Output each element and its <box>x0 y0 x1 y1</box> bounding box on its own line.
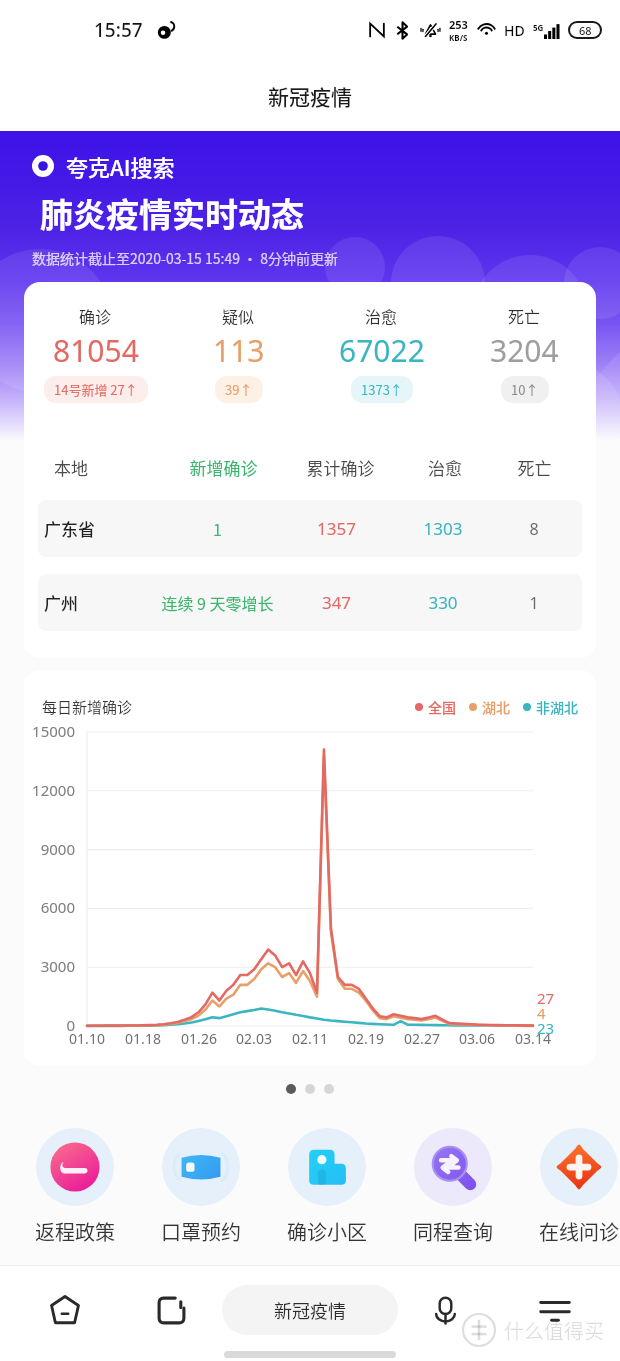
staticText: 死亡 <box>493 455 576 480</box>
staticText: 347 <box>279 591 394 614</box>
button[interactable]: 新冠疫情 <box>268 81 352 111</box>
button[interactable]: 确诊小区 <box>287 1128 367 1246</box>
staticText: 81054 <box>53 330 139 371</box>
button[interactable]: 新冠疫情 <box>222 1285 398 1335</box>
staticText: 3204 <box>490 330 559 371</box>
staticText: 113 <box>213 330 265 371</box>
button[interactable]: 广州 <box>38 574 582 631</box>
staticText: 累计确诊 <box>284 455 397 480</box>
button[interactable]: 语音搜索 <box>420 1285 470 1335</box>
staticText: 1303 <box>394 517 492 540</box>
button[interactable]: 湖北 <box>469 697 510 717</box>
button[interactable]: 治愈 <box>310 304 453 403</box>
button[interactable]: 多窗口 <box>144 1283 198 1337</box>
staticText: 02.11 <box>282 1029 338 1048</box>
staticText: 新冠疫情 <box>274 1297 346 1323</box>
staticText: 68 <box>579 23 592 37</box>
staticText: 确诊 <box>79 304 112 327</box>
staticText: 同程查询 <box>413 1217 493 1246</box>
staticText: 03.14 <box>505 1029 561 1048</box>
staticText: 1357 <box>279 517 394 540</box>
button[interactable]: 同程查询 <box>413 1128 493 1246</box>
staticText: 返程政策 <box>35 1217 115 1246</box>
staticText: 12000 <box>24 780 75 800</box>
button[interactable]: 口罩预约 <box>161 1128 241 1246</box>
staticText: 5G <box>533 22 544 33</box>
staticText: 01.18 <box>115 1029 171 1048</box>
button[interactable]: 夸克AI搜索 <box>32 150 175 182</box>
staticText: 湖北 <box>482 697 510 717</box>
staticText: 1 <box>492 592 576 614</box>
staticText: 本地 <box>54 455 163 480</box>
staticText: 330 <box>394 591 492 614</box>
staticText: 广东省 <box>44 516 156 541</box>
staticText: 1 <box>156 517 279 540</box>
staticText: 14号新增 27↑ <box>54 380 138 399</box>
staticText: 死亡 <box>508 304 541 327</box>
button[interactable]: 首页 <box>38 1283 92 1337</box>
staticText: 15:57 <box>94 17 143 43</box>
button[interactable]: 广东省 <box>38 500 582 557</box>
staticText: 连续 9 天零增长 <box>156 591 279 614</box>
staticText: 15000 <box>24 721 75 741</box>
staticText: 4 <box>537 1003 546 1023</box>
button[interactable]: 全国 <box>415 697 456 717</box>
staticText: 6000 <box>24 897 75 917</box>
staticText: 肺炎疫情实时动态 <box>40 189 304 237</box>
button[interactable]: 疑似 <box>167 304 310 403</box>
staticText: 01.10 <box>59 1029 115 1048</box>
staticText: 01.26 <box>171 1029 227 1048</box>
staticText: 02.03 <box>226 1029 282 1048</box>
staticText: 治愈 <box>397 455 493 480</box>
button[interactable]: 非湖北 <box>523 697 578 717</box>
staticText: 1373↑ <box>361 380 403 399</box>
staticText: 数据统计截止至2020-03-15 15:49 · 8分钟前更新 <box>32 248 339 268</box>
staticText: 非湖北 <box>536 697 578 717</box>
staticText: 67022 <box>339 330 425 371</box>
staticText: KB/S <box>449 32 468 43</box>
button[interactable]: 在线问诊 <box>539 1128 619 1246</box>
staticText: 全国 <box>428 697 456 717</box>
staticText: 3000 <box>24 956 75 976</box>
staticText: 新增确诊 <box>163 455 284 480</box>
staticText: 广州 <box>44 590 156 615</box>
staticText: 口罩预约 <box>161 1217 241 1246</box>
staticText: 253 <box>449 17 468 32</box>
staticText: 03.06 <box>449 1029 505 1048</box>
staticText: 夸克AI搜索 <box>66 150 175 182</box>
staticText: 疑似 <box>222 304 255 327</box>
staticText: 9000 <box>24 839 75 859</box>
staticText: 02.27 <box>394 1029 450 1048</box>
button[interactable]: 确诊 <box>24 304 167 403</box>
staticText: 每日新增确诊 <box>42 696 133 718</box>
staticText: 02.19 <box>338 1029 394 1048</box>
staticText: HD <box>504 21 525 40</box>
staticText: 0 <box>24 1015 75 1035</box>
button[interactable]: 死亡 <box>453 304 596 403</box>
staticText: 23 <box>537 1018 555 1038</box>
staticText: 10↑ <box>511 380 539 399</box>
staticText: 27 <box>537 988 555 1008</box>
staticText: 治愈 <box>365 304 398 327</box>
button[interactable]: 菜单 <box>530 1285 580 1335</box>
staticText: 确诊小区 <box>287 1217 367 1246</box>
staticText: 什么值得买 <box>504 1316 604 1345</box>
staticText: 39↑ <box>225 380 253 399</box>
button[interactable]: 返程政策 <box>35 1128 115 1246</box>
staticText: 在线问诊 <box>539 1217 619 1246</box>
staticText: 8 <box>492 518 576 540</box>
